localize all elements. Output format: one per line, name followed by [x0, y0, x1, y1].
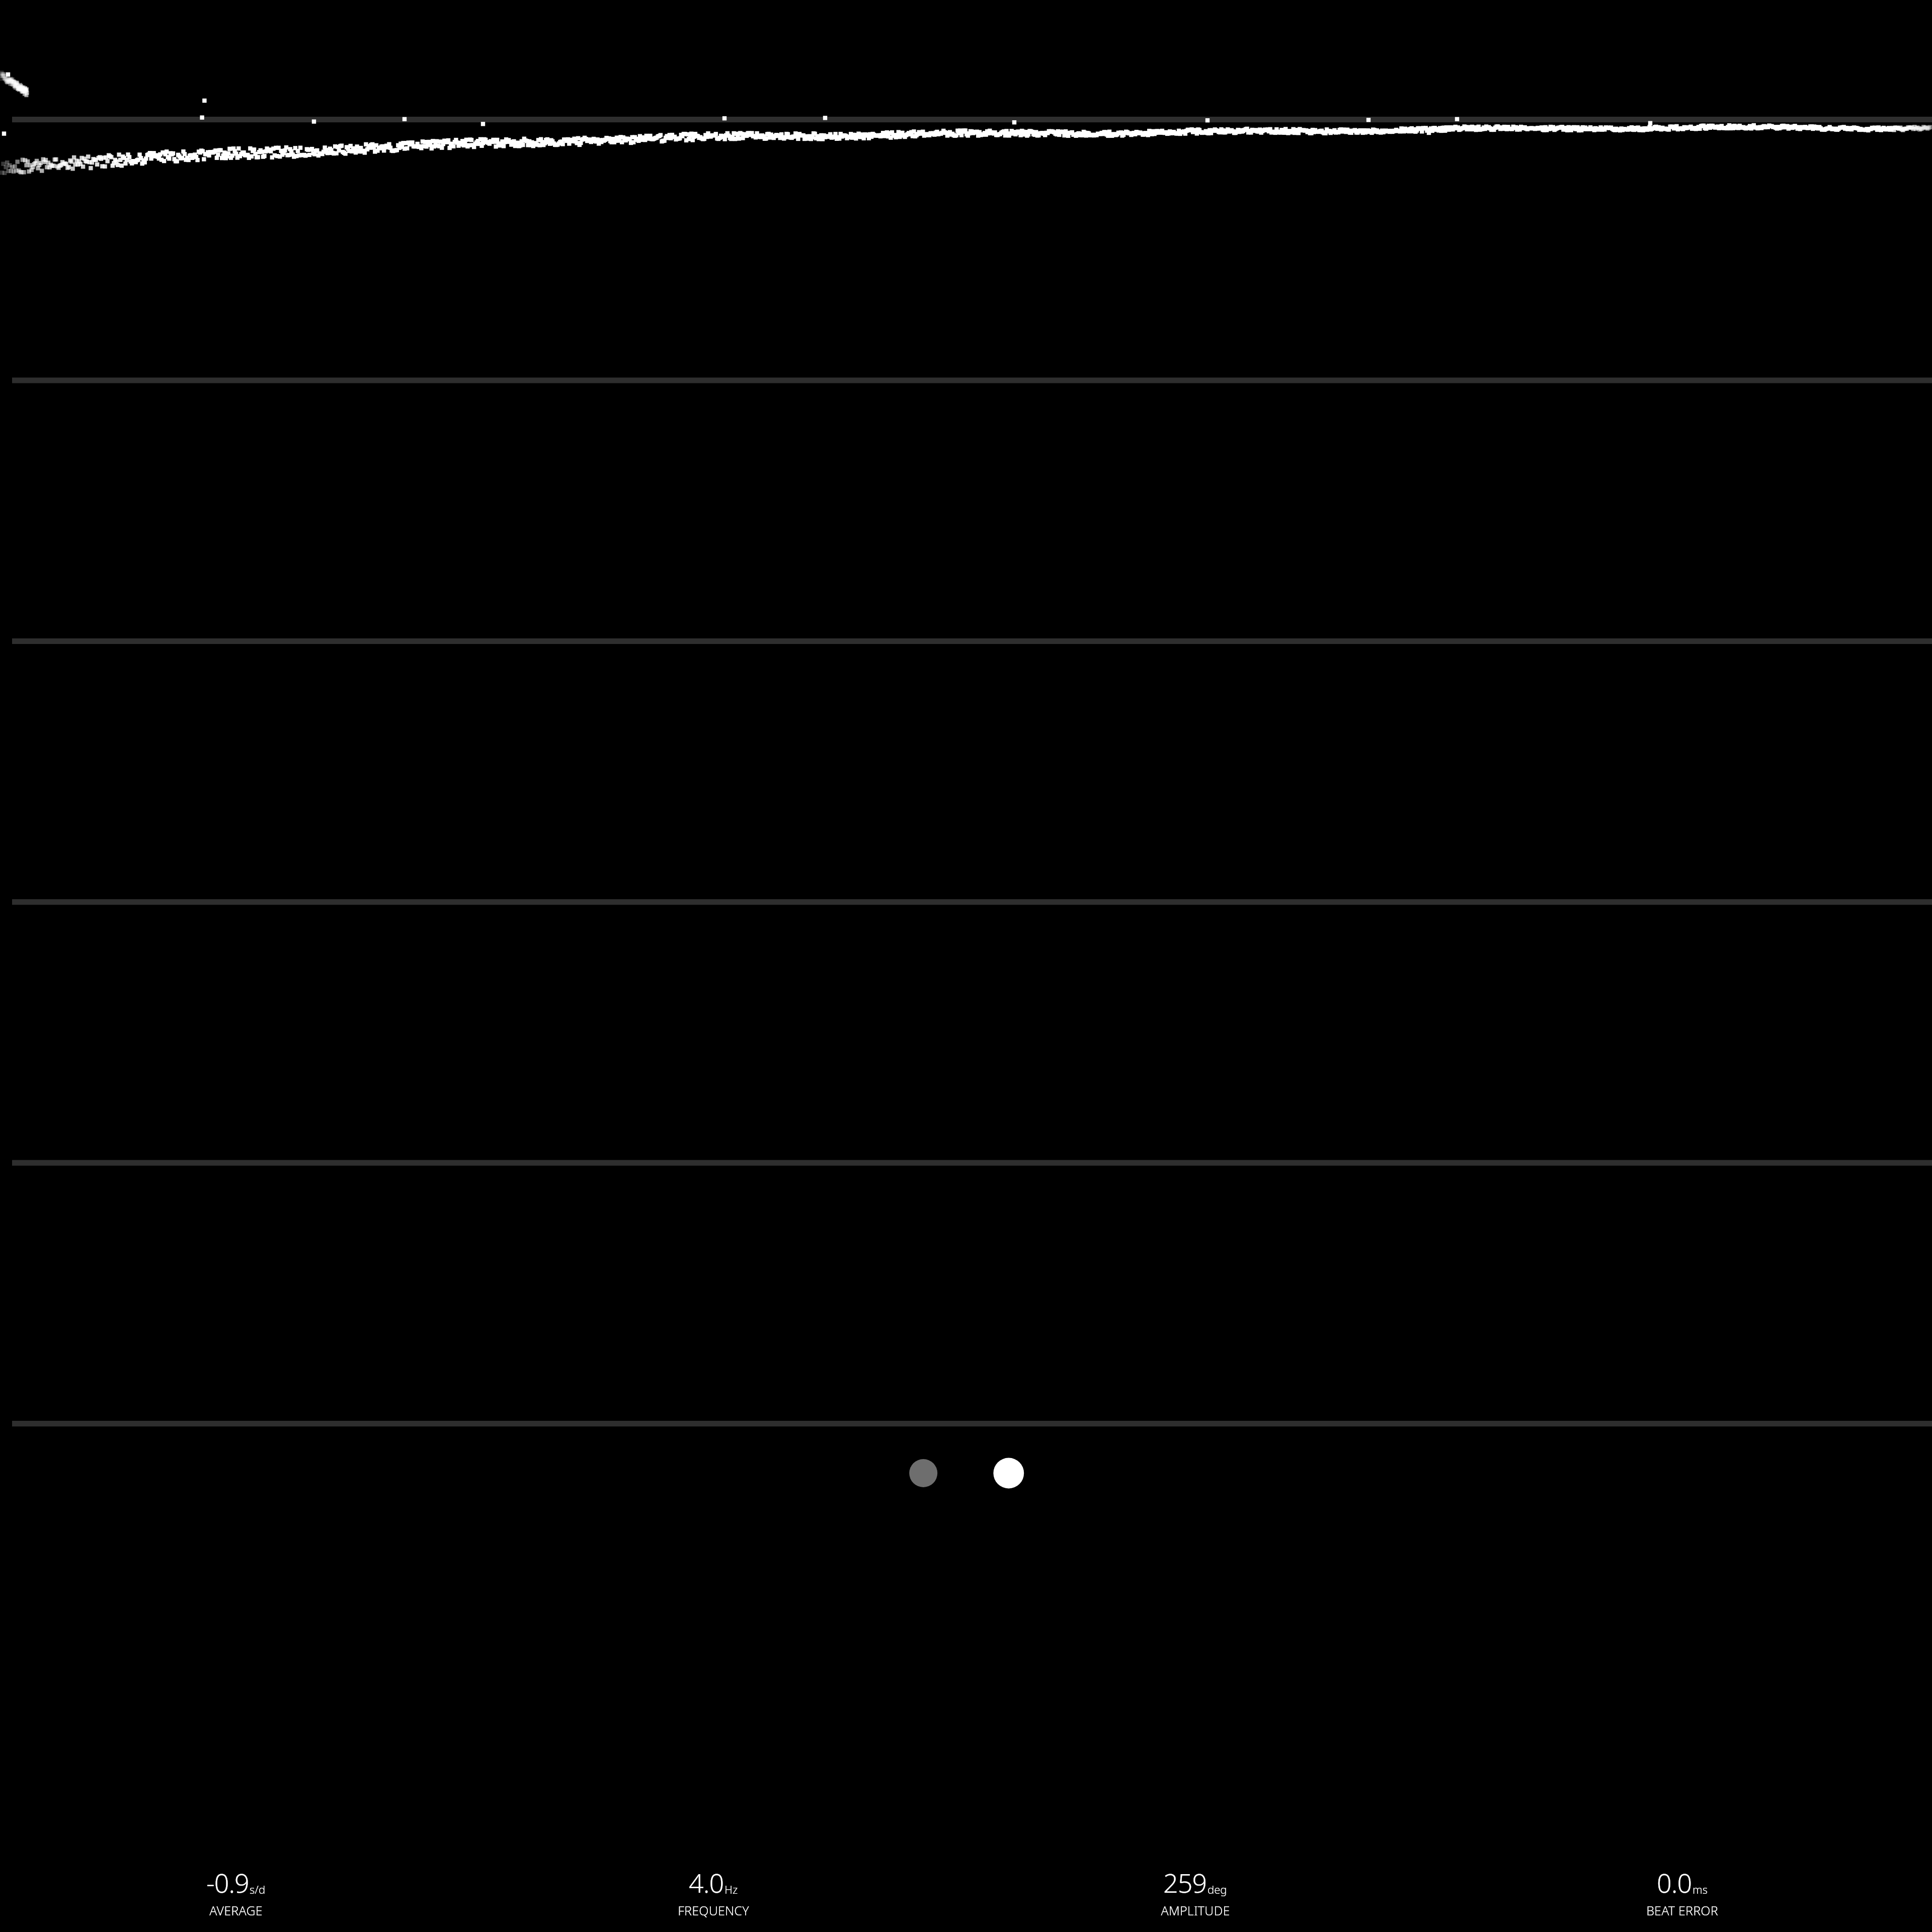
- staticText: Hz: [725, 1882, 738, 1897]
- button[interactable]: 0.0: [1434, 1865, 1930, 1919]
- staticText: s/d: [250, 1882, 266, 1897]
- button[interactable]: 259: [956, 1865, 1434, 1919]
- staticText: 259: [1163, 1865, 1207, 1900]
- staticText: 0.0: [1657, 1865, 1692, 1900]
- staticText: -0.9: [206, 1865, 249, 1900]
- staticText: AVERAGE: [209, 1902, 263, 1919]
- button[interactable]: 4.0: [470, 1865, 956, 1919]
- staticText: ms: [1693, 1882, 1708, 1897]
- staticText: 4.0: [689, 1865, 724, 1900]
- button[interactable]: Page indicator, page 2 of 2: [0, 0, 1932, 1932]
- staticText: FREQUENCY: [678, 1902, 749, 1919]
- button[interactable]: -0.9: [2, 1865, 470, 1919]
- staticText: AMPLITUDE: [1161, 1902, 1230, 1919]
- staticText: BEAT ERROR: [1646, 1902, 1718, 1919]
- staticText: deg: [1207, 1882, 1227, 1897]
